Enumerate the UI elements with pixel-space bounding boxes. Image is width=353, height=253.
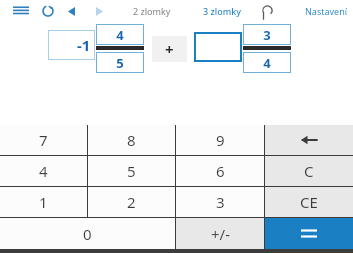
staticText: -1 bbox=[77, 35, 91, 55]
button[interactable]: 2 bbox=[88, 187, 175, 217]
staticText: 8 bbox=[127, 130, 136, 150]
staticText: 4 bbox=[116, 26, 124, 44]
button[interactable]: CE bbox=[265, 187, 353, 217]
button[interactable]: + bbox=[152, 36, 187, 62]
staticText: 3 bbox=[216, 192, 225, 212]
button[interactable]: Menu bbox=[10, 2, 32, 20]
staticText: 9 bbox=[216, 130, 225, 150]
button[interactable]: 3 zlomky bbox=[203, 0, 242, 22]
button[interactable]: +/- bbox=[176, 218, 264, 249]
staticText: 7 bbox=[39, 130, 48, 150]
staticText: 5 bbox=[116, 54, 124, 72]
staticText: 3 zlomky bbox=[203, 5, 242, 17]
button[interactable]: Refresh bbox=[38, 2, 58, 20]
button[interactable] bbox=[194, 32, 242, 62]
staticText: 4 bbox=[39, 161, 48, 181]
staticText: + bbox=[165, 39, 174, 59]
button[interactable]: 4 bbox=[243, 52, 291, 73]
staticText: 2 zlomky bbox=[133, 5, 171, 17]
button[interactable]: 3 bbox=[176, 187, 264, 217]
staticText: CE bbox=[300, 192, 318, 212]
button[interactable]: 8 bbox=[88, 125, 175, 155]
button[interactable]: Nastavení bbox=[305, 0, 348, 22]
button[interactable]: 3 bbox=[243, 24, 291, 45]
button[interactable]: Undo bbox=[258, 2, 276, 20]
button[interactable]: 4 bbox=[0, 156, 87, 186]
staticText: C bbox=[304, 161, 314, 181]
staticText: 4 bbox=[263, 54, 271, 72]
button[interactable]: 1 bbox=[0, 187, 87, 217]
staticText: 0 bbox=[83, 224, 92, 244]
button[interactable]: 5 bbox=[88, 156, 175, 186]
button[interactable]: 6 bbox=[176, 156, 264, 186]
staticText: 3 bbox=[263, 26, 271, 44]
staticText: 5 bbox=[127, 161, 136, 181]
button[interactable]: Next bbox=[90, 2, 108, 20]
button[interactable]: Equals bbox=[265, 218, 353, 249]
staticText: 2 bbox=[127, 192, 136, 212]
staticText: Nastavení bbox=[305, 5, 348, 17]
button[interactable]: C bbox=[265, 156, 353, 186]
button[interactable]: 5 bbox=[96, 52, 144, 73]
button[interactable]: Backspace bbox=[265, 125, 353, 155]
staticText: 1 bbox=[39, 192, 48, 212]
button[interactable]: Previous bbox=[62, 2, 80, 20]
button[interactable]: -1 bbox=[48, 30, 95, 60]
button[interactable]: 2 zlomky bbox=[133, 0, 171, 22]
button[interactable]: 4 bbox=[96, 24, 144, 45]
button[interactable]: 0 bbox=[0, 218, 175, 249]
button[interactable]: 9 bbox=[176, 125, 264, 155]
staticText: +/- bbox=[211, 224, 230, 244]
staticText: 6 bbox=[216, 161, 225, 181]
button[interactable]: 7 bbox=[0, 125, 87, 155]
